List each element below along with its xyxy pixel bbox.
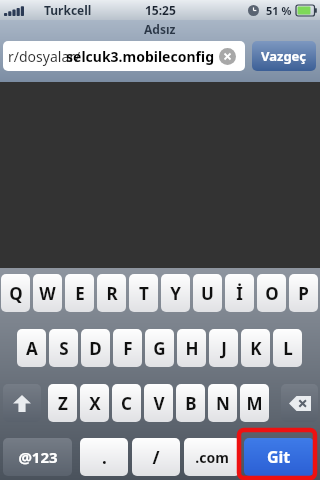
staticText: İ <box>236 282 243 305</box>
button[interactable]: C <box>112 384 141 422</box>
button[interactable]: .com <box>184 438 240 476</box>
staticText: V <box>153 392 165 415</box>
staticText: Q <box>9 282 23 305</box>
button[interactable]: X <box>80 384 109 422</box>
button[interactable]: B <box>176 384 205 422</box>
button[interactable]: E <box>65 274 94 312</box>
staticText: 51 % <box>266 3 292 18</box>
staticText: .com <box>195 448 229 467</box>
staticText: S <box>59 337 69 360</box>
button[interactable]: A <box>17 329 46 367</box>
button[interactable]: G <box>145 329 174 367</box>
staticText: Turkcell <box>44 2 92 18</box>
button[interactable]: @123 <box>3 438 72 476</box>
staticText: D <box>89 337 102 360</box>
staticText: O <box>265 282 279 305</box>
button[interactable]: Backspace <box>281 384 318 422</box>
button[interactable]: Git <box>244 438 314 476</box>
staticText: Z <box>58 392 68 415</box>
staticText: P <box>298 282 309 305</box>
button[interactable]: r/dosyalar/ <box>3 41 245 71</box>
button[interactable]: M <box>240 384 269 422</box>
button[interactable]: S <box>49 329 78 367</box>
staticText: C <box>121 392 132 415</box>
button[interactable]: T <box>129 274 158 312</box>
staticText: G <box>153 337 166 360</box>
button[interactable]: Q <box>1 274 30 312</box>
staticText: R <box>106 282 118 305</box>
staticText: A <box>26 337 38 360</box>
button[interactable]: Z <box>48 384 77 422</box>
button[interactable]: Shift <box>3 384 41 422</box>
button[interactable]: V <box>144 384 173 422</box>
button[interactable]: R <box>97 274 126 312</box>
staticText: B <box>185 392 197 415</box>
staticText: Y <box>170 282 181 305</box>
button[interactable]: O <box>257 274 286 312</box>
button[interactable]: Y <box>161 274 190 312</box>
staticText: U <box>201 282 214 305</box>
staticText: selcuk3.mobileconfig <box>66 47 214 66</box>
button[interactable]: H <box>177 329 206 367</box>
staticText: r/dosyalar/ <box>8 47 81 66</box>
button[interactable]: Clear text <box>219 48 236 65</box>
button[interactable]: W <box>33 274 62 312</box>
staticText: N <box>216 392 230 415</box>
staticText: W <box>39 282 56 305</box>
staticText: Adsız <box>144 21 176 37</box>
staticText: L <box>283 337 293 360</box>
button[interactable]: L <box>273 329 302 367</box>
staticText: T <box>139 282 149 305</box>
staticText: X <box>89 392 101 415</box>
staticText: Git <box>267 446 291 468</box>
button[interactable]: F <box>113 329 142 367</box>
staticText: @123 <box>18 447 58 467</box>
button[interactable]: N <box>208 384 237 422</box>
staticText: K <box>250 337 262 360</box>
staticText: Vazgeç <box>261 47 307 65</box>
staticText: . <box>102 446 107 469</box>
staticText: E <box>75 282 85 305</box>
button[interactable]: J <box>209 329 238 367</box>
button[interactable]: P <box>289 274 318 312</box>
staticText: J <box>221 337 227 360</box>
button[interactable]: U <box>193 274 222 312</box>
staticText: 15:25 <box>145 2 176 18</box>
staticText: M <box>246 392 263 415</box>
staticText: / <box>152 446 160 469</box>
button[interactable]: K <box>241 329 270 367</box>
staticText: H <box>185 337 199 360</box>
button[interactable]: / <box>132 438 180 476</box>
button[interactable]: Vazgeç <box>252 41 316 71</box>
button[interactable]: D <box>81 329 110 367</box>
button[interactable]: . <box>80 438 128 476</box>
button[interactable]: İ <box>225 274 254 312</box>
staticText: F <box>123 337 133 360</box>
